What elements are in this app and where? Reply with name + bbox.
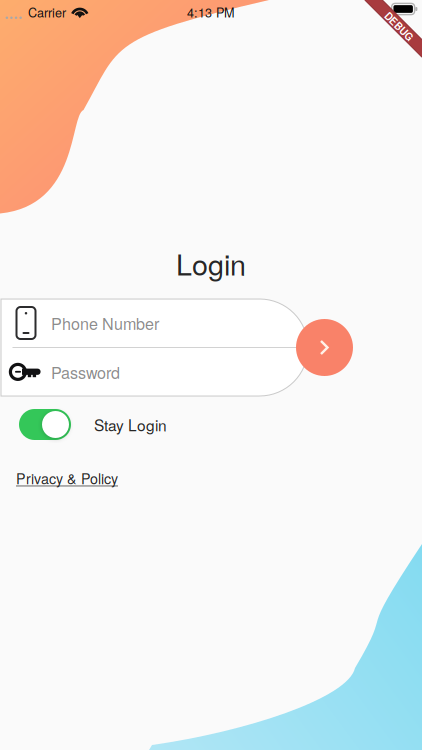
staticText: Login [176, 242, 246, 284]
staticText: DEBUG [381, 19, 417, 34]
staticText: Privacy & Policy [16, 468, 118, 488]
button[interactable]: Stay Login [0, 409, 422, 440]
staticText: Carrier [28, 3, 66, 21]
staticText: 4:13 PM [187, 3, 235, 21]
staticText: Phone Number [51, 311, 159, 334]
staticText: Password [51, 360, 120, 383]
button[interactable]: Privacy & Policy [0, 469, 422, 487]
button[interactable]: Continue [296, 319, 353, 376]
staticText: Stay Login [94, 413, 167, 435]
